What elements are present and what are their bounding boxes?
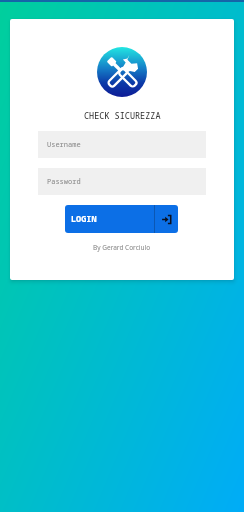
button[interactable]: Username bbox=[38, 131, 206, 158]
staticText: CHECK SICUREZZA bbox=[84, 110, 161, 122]
staticText: By Gerard Corciulo bbox=[93, 243, 151, 252]
button[interactable]: Password bbox=[38, 168, 206, 195]
staticText: Password bbox=[47, 177, 81, 187]
button[interactable]: LOGIN bbox=[65, 205, 178, 233]
staticText: Username bbox=[47, 140, 81, 150]
other: Login bbox=[155, 205, 178, 233]
staticText: LOGIN bbox=[71, 213, 97, 225]
